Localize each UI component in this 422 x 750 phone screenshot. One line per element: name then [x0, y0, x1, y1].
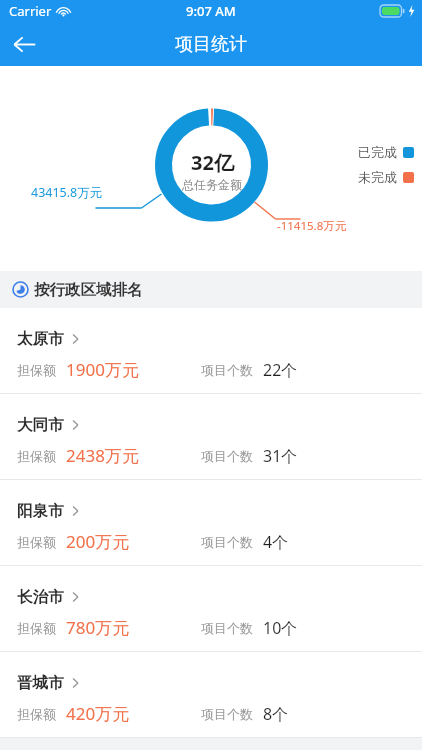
- staticText: 43415.8万元: [31, 184, 103, 201]
- staticText: 长治市: [17, 587, 64, 607]
- button[interactable]: 阳泉市: [0, 480, 422, 566]
- staticText: 22个: [263, 359, 298, 381]
- staticText: 项目个数: [201, 448, 253, 464]
- staticText: 420万元: [66, 702, 130, 725]
- staticText: 2438万元: [66, 444, 139, 467]
- staticText: 项目统计: [175, 33, 247, 56]
- staticText: 31个: [263, 445, 298, 467]
- staticText: 太原市: [17, 329, 64, 349]
- staticText: 32亿: [191, 149, 234, 176]
- button[interactable]: 太原市: [0, 308, 422, 394]
- staticText: 项目个数: [201, 534, 253, 550]
- button[interactable]: 未完成: [358, 169, 414, 185]
- staticText: 项目个数: [201, 362, 253, 378]
- staticText: 项目个数: [201, 620, 253, 636]
- staticText: 9:07 AM: [186, 2, 236, 20]
- staticText: 10个: [263, 617, 298, 639]
- staticText: 担保额: [17, 534, 56, 550]
- button[interactable]: 大同市: [0, 394, 422, 480]
- staticText: Carrier: [9, 2, 52, 20]
- staticText: 晋城市: [17, 673, 64, 693]
- staticText: 780万元: [66, 616, 130, 639]
- staticText: 担保额: [17, 620, 56, 636]
- button[interactable]: 已完成: [358, 144, 414, 160]
- staticText: 担保额: [17, 448, 56, 464]
- staticText: 已完成: [358, 144, 397, 160]
- staticText: 担保额: [17, 362, 56, 378]
- button[interactable]: 晋城市: [0, 652, 422, 738]
- staticText: 4个: [263, 531, 289, 553]
- staticText: 阳泉市: [17, 501, 64, 521]
- staticText: 按行政区域排名: [34, 280, 143, 300]
- staticText: 担保额: [17, 706, 56, 722]
- staticText: 8个: [263, 703, 289, 725]
- button[interactable]: Back: [0, 22, 48, 66]
- staticText: 项目个数: [201, 706, 253, 722]
- staticText: 未完成: [358, 169, 397, 185]
- staticText: -11415.8万元: [277, 218, 347, 234]
- button[interactable]: 长治市: [0, 566, 422, 652]
- staticText: 大同市: [17, 415, 64, 435]
- staticText: 1900万元: [66, 358, 139, 381]
- staticText: 200万元: [66, 530, 130, 553]
- staticText: 总任务金额: [182, 177, 242, 192]
